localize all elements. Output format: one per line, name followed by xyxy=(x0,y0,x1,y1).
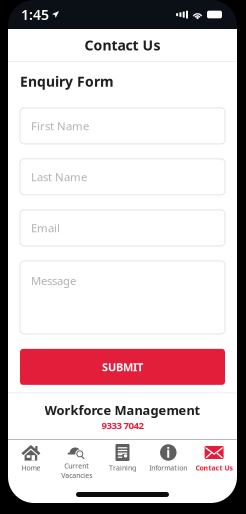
staticText: 9333 7042 xyxy=(101,419,143,432)
button[interactable]: SUBMIT xyxy=(20,349,225,385)
button[interactable]: Contact Us xyxy=(191,440,237,478)
staticText: Information xyxy=(149,463,187,472)
staticText: Home xyxy=(21,463,40,472)
staticText: i xyxy=(166,443,170,462)
button[interactable]: i xyxy=(145,440,191,478)
staticText: Message xyxy=(31,273,76,288)
button[interactable]: Email xyxy=(20,210,225,246)
staticText: 1:45 xyxy=(21,5,49,24)
button[interactable]: Current xyxy=(54,440,100,478)
button[interactable]: First Name xyxy=(20,108,225,144)
staticText: Email xyxy=(31,220,60,236)
staticText: Contact Us xyxy=(196,463,233,472)
button[interactable]: Home xyxy=(8,440,54,478)
button[interactable]: Training xyxy=(100,440,145,478)
button[interactable]: Message xyxy=(20,261,225,334)
staticText: Last Name xyxy=(31,169,87,185)
staticText: Current xyxy=(64,461,89,470)
staticText: Vacancies xyxy=(61,470,92,480)
staticText: SUBMIT xyxy=(102,359,143,374)
staticText: Workforce Management xyxy=(44,401,200,419)
staticText: Training xyxy=(109,463,136,472)
staticText: Enquiry Form xyxy=(20,72,114,91)
staticText: Contact Us xyxy=(84,35,160,55)
button[interactable]: Last Name xyxy=(20,159,225,195)
staticText: First Name xyxy=(31,118,89,134)
